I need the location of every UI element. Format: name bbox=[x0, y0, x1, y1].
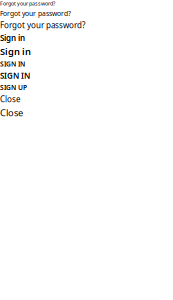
staticText: SIGN UP bbox=[0, 83, 27, 92]
staticText: Forgot your password? bbox=[0, 9, 71, 18]
staticText: Sign in bbox=[0, 45, 31, 58]
staticText: Sign in bbox=[0, 33, 25, 43]
staticText: SIGN IN bbox=[0, 60, 25, 68]
staticText: Close bbox=[0, 106, 23, 119]
staticText: Close bbox=[0, 94, 21, 104]
staticText: SIGN IN bbox=[0, 70, 30, 81]
staticText: Forgot your password? bbox=[0, 0, 55, 7]
staticText: Forgot your password? bbox=[0, 20, 85, 30]
